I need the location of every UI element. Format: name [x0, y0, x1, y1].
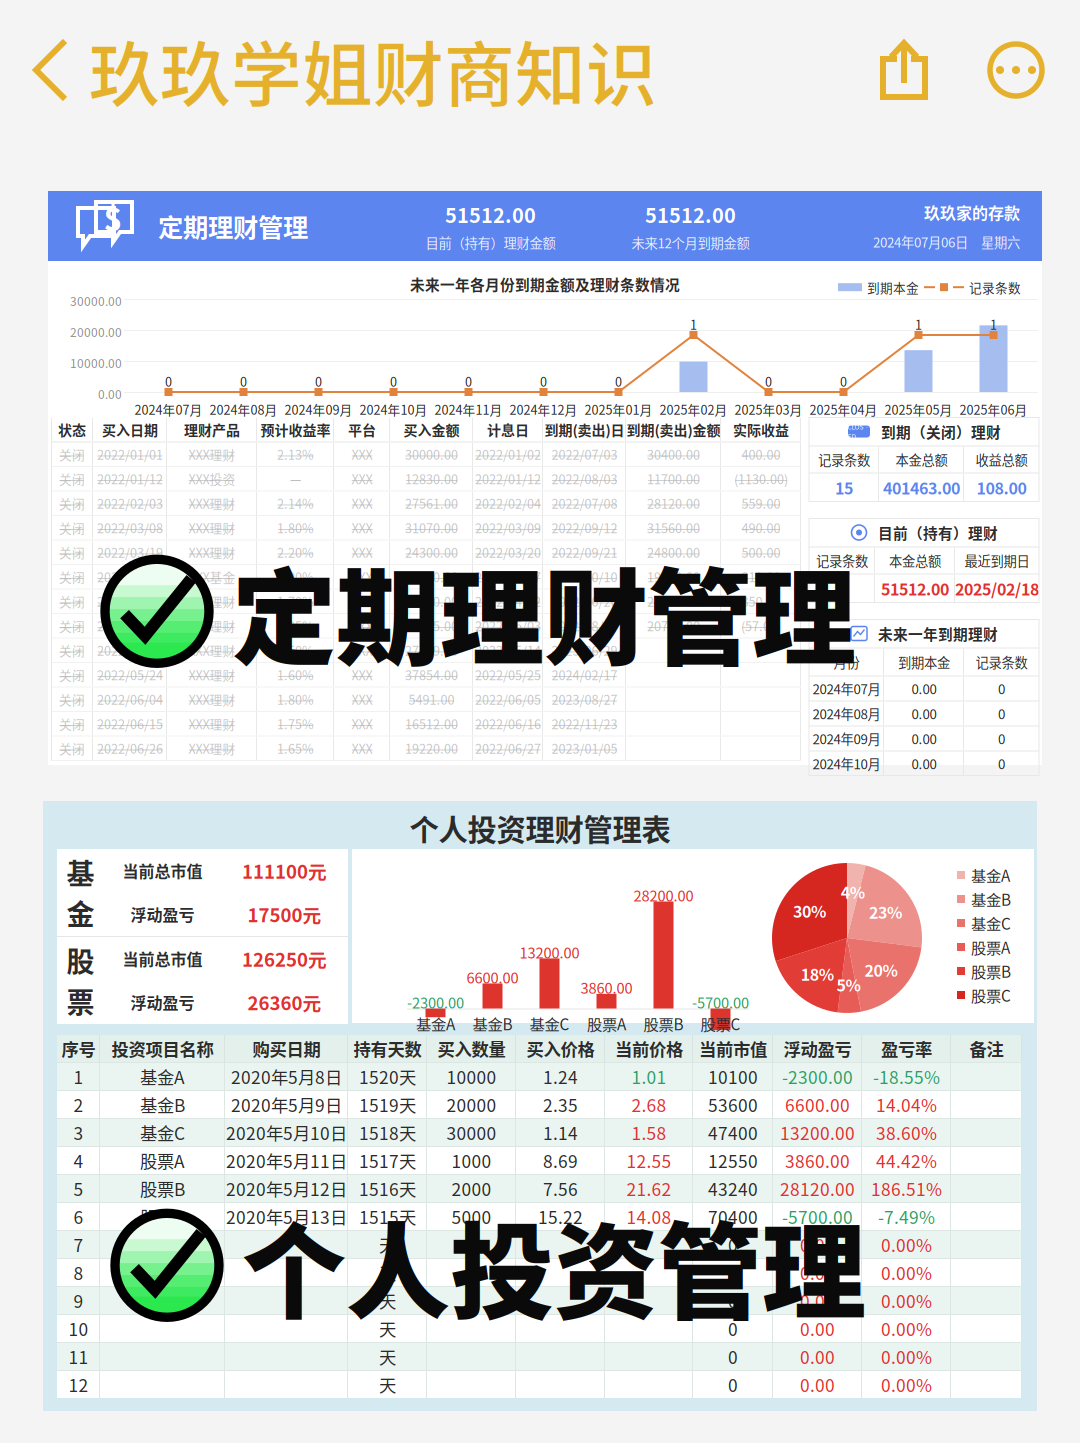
staticText: 18% [801, 962, 834, 985]
staticText: 2022/09/12 [551, 519, 617, 537]
staticText: 理财产品 [184, 419, 240, 440]
staticText: 基金B [140, 1092, 185, 1117]
staticText: 2020年5月12日 [226, 1176, 347, 1201]
staticText: 收益总额 [975, 450, 1027, 469]
staticText: 未来一年各月份到期金额及理财条数情况 [410, 273, 680, 295]
staticText: 2022/03/09 [475, 519, 541, 537]
staticText: 7.56 [543, 1176, 578, 1201]
button[interactable]: More [958, 42, 1080, 98]
staticText: 0.00 [800, 1260, 835, 1285]
staticText: 关闭 [59, 641, 85, 659]
staticText: 2022/05/02 [97, 617, 163, 635]
staticText: 111100元 [242, 857, 327, 884]
staticText: 1 [73, 1064, 83, 1089]
staticText: 2022/04/22 [475, 592, 541, 610]
staticText: 6600.00 [466, 966, 518, 988]
staticText: 本金总额 [889, 551, 941, 570]
staticText: 1.58 [631, 1120, 666, 1145]
staticText: 0.00% [881, 1316, 932, 1341]
staticText: 0 [390, 372, 397, 390]
staticText: 2022/06/04 [97, 690, 163, 708]
staticText: 6 [73, 1204, 83, 1229]
staticText: XXX投资 [188, 470, 235, 488]
button[interactable]: Back [0, 38, 89, 102]
staticText: 买入金额 [403, 419, 459, 440]
staticText: 序号 [61, 1036, 95, 1061]
staticText: 31070.00 [405, 519, 458, 537]
staticText: 0.00 [800, 1372, 835, 1397]
staticText: 8.69 [543, 1148, 578, 1173]
staticText: 0.00% [881, 1260, 932, 1285]
staticText: 基金B [472, 1012, 512, 1035]
staticText: XXX理财 [188, 641, 235, 659]
staticText: 0 [728, 1260, 738, 1285]
staticText: 2024年07月06日 星期六 [873, 232, 1020, 251]
staticText: 1.01 [631, 1064, 666, 1089]
staticText: 0.00 [911, 679, 936, 698]
staticText: 股票B [140, 1176, 185, 1201]
staticText: 0 [998, 704, 1005, 723]
staticText: 1 [990, 315, 997, 333]
staticText: 0.00% [881, 1288, 932, 1313]
staticText: 平台 [348, 419, 376, 440]
staticText: 30% [793, 899, 826, 922]
staticText: 天 [379, 1232, 396, 1257]
staticText: 2022/06/26 [97, 739, 163, 757]
staticText: 到期本金 [898, 652, 950, 672]
staticText: 2022/06/15 [97, 715, 163, 733]
staticText: -18.55% [873, 1064, 940, 1089]
staticText: 2025年01月 [584, 400, 652, 418]
button[interactable]: Share [880, 39, 958, 101]
staticText: -2300.00 [407, 991, 464, 1013]
staticText: 500.00 [741, 543, 780, 561]
staticText: 53600 [708, 1092, 758, 1117]
staticText: XXX [351, 568, 372, 586]
staticText: XXX理财 [188, 592, 235, 610]
staticText: 28120.00 [647, 494, 700, 512]
staticText: -2300.00 [782, 1064, 853, 1089]
staticText: 2 [73, 1092, 83, 1117]
staticText: 24300.00 [405, 543, 458, 561]
staticText: 到期(卖出)日 [544, 419, 624, 440]
staticText: 2022/07/08 [551, 494, 617, 512]
staticText: 0.00 [911, 729, 936, 748]
staticText: 股票A [587, 1012, 626, 1035]
staticText: 个人投资理财管理表 [409, 807, 670, 849]
staticText: 12550 [708, 1148, 758, 1173]
staticText: 2023/08/27 [551, 690, 617, 708]
staticText: 未来一年到期理财 [878, 623, 998, 644]
staticText: 基金C [971, 912, 1011, 934]
staticText: 2022/05/13 [97, 641, 163, 659]
staticText: 0 [728, 1372, 738, 1397]
staticText: 投资项目名称 [111, 1036, 213, 1061]
staticText: 2022/06/16 [475, 715, 541, 733]
staticText: 1 [690, 315, 697, 333]
staticText: 2.14% [277, 494, 314, 512]
staticText: 4% [841, 880, 865, 903]
staticText: 1.50% [277, 641, 314, 659]
staticText: 基金B [971, 888, 1011, 910]
staticText: 天 [379, 1372, 396, 1397]
staticText: 18900.00 [405, 568, 458, 586]
staticText: 玖玖家的存款 [924, 201, 1020, 224]
staticText: 490.00 [741, 519, 780, 537]
staticText: 2022/05/25 [475, 666, 541, 684]
staticText: 0.00 [800, 1316, 835, 1341]
staticText: 2022/06/27 [475, 739, 541, 757]
staticText: XXX理财 [188, 543, 235, 561]
staticText: XXX [351, 543, 372, 561]
staticText: 0 [728, 1232, 738, 1257]
staticText: 2.20% [277, 543, 314, 561]
staticText: 关闭 [59, 445, 85, 463]
staticText: 当前总市值 [122, 947, 202, 970]
staticText: 天 [379, 1344, 396, 1369]
staticText: 1000 [451, 1148, 491, 1173]
staticText: 1.65% [277, 739, 314, 757]
staticText: 记录条数 [975, 652, 1027, 672]
staticText: 43240 [708, 1176, 758, 1201]
staticText: 股票B [643, 1012, 683, 1035]
staticText: 15 [835, 476, 853, 499]
staticText: 17500元 [247, 900, 321, 927]
staticText: 3860.00 [580, 977, 632, 998]
staticText: 0 [315, 372, 322, 390]
